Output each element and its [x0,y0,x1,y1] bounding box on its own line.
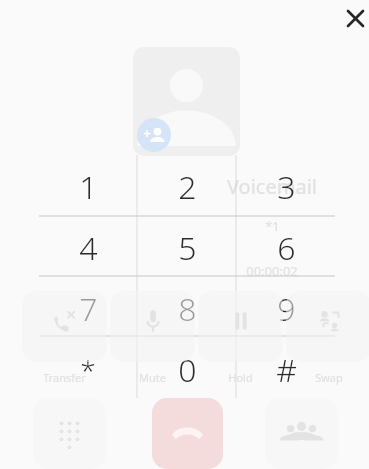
staticText: # [276,348,297,392]
staticText: 6 [277,226,296,270]
button[interactable]: Close [340,3,369,33]
staticText: 9 [277,287,296,331]
button[interactable]: 3 [253,159,319,215]
button[interactable]: Contact photo [133,47,240,156]
button[interactable] [110,291,195,362]
staticText: Hold [228,370,253,385]
staticText: 8 [178,287,197,331]
button[interactable] [22,291,107,362]
button[interactable]: 0 [154,342,220,398]
staticText: 7 [79,287,98,331]
staticText: 0 [178,348,197,392]
staticText: 1 [79,165,98,209]
staticText: 5 [178,226,197,270]
staticText: Mute [139,370,166,385]
staticText: 4 [79,226,98,270]
button[interactable]: 1 [55,159,121,215]
button[interactable]: 2 [154,159,220,215]
button[interactable]: 9 [253,281,319,337]
staticText: 3 [277,165,296,209]
button[interactable]: 7 [55,281,121,337]
button[interactable] [198,291,283,362]
staticText: 00:00:02 [246,262,298,280]
staticText: Swap [315,370,343,385]
button[interactable]: * [55,342,121,398]
button[interactable]: 4 [55,220,121,276]
button[interactable] [286,291,369,362]
staticText: * [80,351,96,389]
staticText: *1 [265,217,280,235]
button[interactable]: 6 [253,220,319,276]
staticText: Transfer [43,370,86,385]
button[interactable]: End call [152,398,223,469]
staticText: 2 [178,165,197,209]
button[interactable]: 5 [154,220,220,276]
button[interactable]: # [253,342,319,398]
button[interactable]: Add contact [265,398,338,469]
button[interactable]: 8 [154,281,220,337]
staticText: Voicemail [227,173,317,199]
